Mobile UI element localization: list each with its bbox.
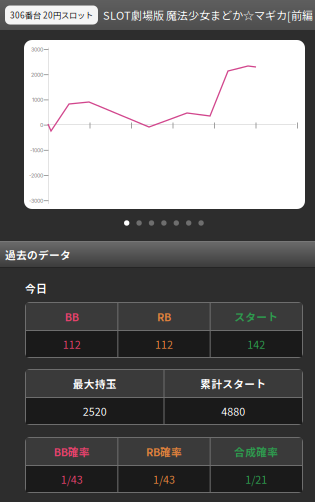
staticText: 過去のデータ	[5, 247, 71, 262]
staticText: 1/43	[153, 471, 175, 487]
staticText: 1000	[32, 97, 43, 103]
staticText: 0	[40, 122, 43, 128]
staticText: BB確率	[54, 444, 90, 459]
staticText: 累計スタート	[200, 376, 266, 391]
staticText: 306番台 20円スロット	[10, 9, 93, 21]
staticText: -2000	[29, 172, 43, 179]
staticText: 1/43	[61, 471, 83, 487]
staticText: RB確率	[146, 444, 182, 459]
button[interactable]: 306番台 20円スロット	[5, 5, 98, 24]
staticText: 112	[155, 336, 173, 352]
staticText: 2000	[31, 71, 43, 78]
staticText: スタート	[234, 309, 278, 324]
staticText: 112	[63, 336, 81, 352]
staticText: -1000	[30, 147, 43, 154]
staticText: 最大持玉	[73, 376, 117, 391]
staticText: 3000	[31, 46, 43, 53]
staticText: 1/21	[245, 471, 267, 487]
staticText: 4880	[221, 403, 245, 419]
staticText: 2520	[83, 403, 107, 419]
staticText: 合成確率	[234, 444, 278, 459]
staticText: BB	[65, 309, 79, 324]
staticText: -3000	[29, 197, 43, 204]
staticText: RB	[157, 309, 171, 324]
staticText: 今日	[25, 280, 47, 296]
staticText: SLOT劇場版 魔法少女まどか☆マギカ[前編	[103, 7, 313, 23]
staticText: 142	[247, 336, 265, 352]
